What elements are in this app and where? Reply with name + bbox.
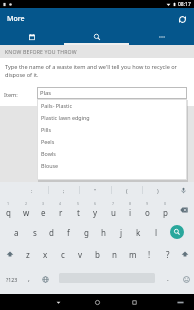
staticText: , <box>28 274 30 283</box>
button[interactable]: Blouse <box>37 159 187 171</box>
staticText: a <box>14 227 19 238</box>
button[interactable]: Plastic lawn edging <box>37 111 187 123</box>
staticText: i <box>129 207 132 218</box>
staticText: l <box>155 227 158 238</box>
button[interactable]: x <box>37 243 54 265</box>
staticText: Blouse <box>41 162 59 169</box>
staticText: ? <box>166 249 170 260</box>
button[interactable]: n <box>106 243 123 265</box>
staticText: x <box>43 249 48 260</box>
staticText: 5 <box>77 201 80 206</box>
staticText: n <box>112 249 117 260</box>
button[interactable]: f <box>60 221 77 243</box>
staticText: 8 <box>129 201 132 206</box>
button[interactable]: Space <box>59 268 155 288</box>
staticText: m <box>129 249 137 260</box>
button[interactable]: m <box>124 243 141 265</box>
staticText: Plastic lawn edging <box>41 114 90 121</box>
button[interactable]: ) <box>142 182 174 199</box>
staticText: Plas <box>40 89 52 97</box>
staticText: w <box>23 207 30 218</box>
staticText: h <box>101 227 106 238</box>
button[interactable]: b <box>89 243 106 265</box>
staticText: 2 <box>25 201 28 206</box>
staticText: t <box>77 207 80 218</box>
button[interactable]: Peels <box>37 135 187 147</box>
button[interactable]: , <box>22 268 36 290</box>
staticText: 1 <box>7 201 10 206</box>
button[interactable]: Switch keyboard <box>170 294 190 310</box>
button[interactable]: z <box>19 243 36 265</box>
staticText: g <box>84 227 89 238</box>
button[interactable]: h <box>95 221 112 243</box>
staticText: Type the name of a waste item and we'll … <box>5 63 186 79</box>
staticText: KNOW BEFORE YOU THROW <box>5 48 77 55</box>
staticText: Bowls <box>41 150 56 157</box>
staticText: d <box>49 227 54 238</box>
button[interactable]: Pills <box>37 123 187 135</box>
button[interactable]: 9 <box>139 199 156 221</box>
staticText: 0 <box>164 201 167 206</box>
button[interactable]: ; <box>48 182 80 199</box>
staticText: " <box>94 187 97 194</box>
button[interactable]: Search <box>165 221 189 243</box>
staticText: 6 <box>94 201 97 206</box>
staticText: Item: <box>4 91 18 99</box>
button[interactable]: ( <box>111 182 143 199</box>
button[interactable]: 5 <box>70 199 87 221</box>
button[interactable]: Emoji <box>178 268 194 290</box>
staticText: c <box>61 249 65 260</box>
button[interactable]: Search <box>64 30 129 43</box>
staticText: y <box>93 207 98 218</box>
staticText: u <box>111 207 116 218</box>
button[interactable]: Shift <box>0 243 19 265</box>
staticText: ( <box>126 187 128 194</box>
staticText: 3 <box>42 201 45 206</box>
staticText: e <box>41 207 46 218</box>
button[interactable]: Hide keyboard <box>48 294 68 310</box>
button[interactable]: Refresh <box>174 11 190 27</box>
staticText: b <box>95 249 100 260</box>
button[interactable]: More options <box>129 30 194 43</box>
staticText: 4 <box>59 201 62 206</box>
button[interactable]: Shift <box>175 243 194 265</box>
button[interactable]: ! <box>141 243 158 265</box>
button[interactable]: 0 <box>157 199 174 221</box>
button[interactable]: Bowls <box>37 147 187 159</box>
button[interactable]: l <box>148 221 165 243</box>
button[interactable]: g <box>78 221 95 243</box>
button[interactable]: Home <box>87 294 107 310</box>
button[interactable]: 6 <box>87 199 104 221</box>
button[interactable]: j <box>113 221 130 243</box>
button[interactable]: Backspace <box>174 199 193 221</box>
button[interactable]: 7 <box>105 199 122 221</box>
button[interactable]: d <box>43 221 60 243</box>
staticText: Peels <box>41 138 55 145</box>
button[interactable]: Voice input <box>172 182 194 199</box>
button[interactable]: 4 <box>52 199 69 221</box>
button[interactable]: Pails- Plastic <box>37 99 187 111</box>
staticText: : <box>31 187 33 194</box>
button[interactable]: v <box>72 243 89 265</box>
button[interactable]: Calendar <box>0 30 64 43</box>
button[interactable]: 2 <box>18 199 35 221</box>
button[interactable]: s <box>26 221 43 243</box>
button[interactable]: k <box>130 221 147 243</box>
button[interactable]: Change language <box>37 268 53 290</box>
button[interactable]: a <box>8 221 25 243</box>
staticText: ! <box>148 249 151 260</box>
button[interactable]: ? <box>159 243 176 265</box>
button[interactable]: " <box>79 182 111 199</box>
button[interactable]: ?123 <box>0 268 25 290</box>
button[interactable]: . <box>161 268 175 290</box>
staticText: 08:17 <box>178 1 191 8</box>
staticText: 7 <box>112 201 115 206</box>
button[interactable]: Recent apps <box>124 294 144 310</box>
button[interactable]: 3 <box>35 199 52 221</box>
button[interactable]: 8 <box>122 199 139 221</box>
staticText: ) <box>157 187 159 194</box>
staticText: q <box>6 207 11 218</box>
button[interactable]: 1 <box>0 199 17 221</box>
button[interactable]: c <box>54 243 71 265</box>
